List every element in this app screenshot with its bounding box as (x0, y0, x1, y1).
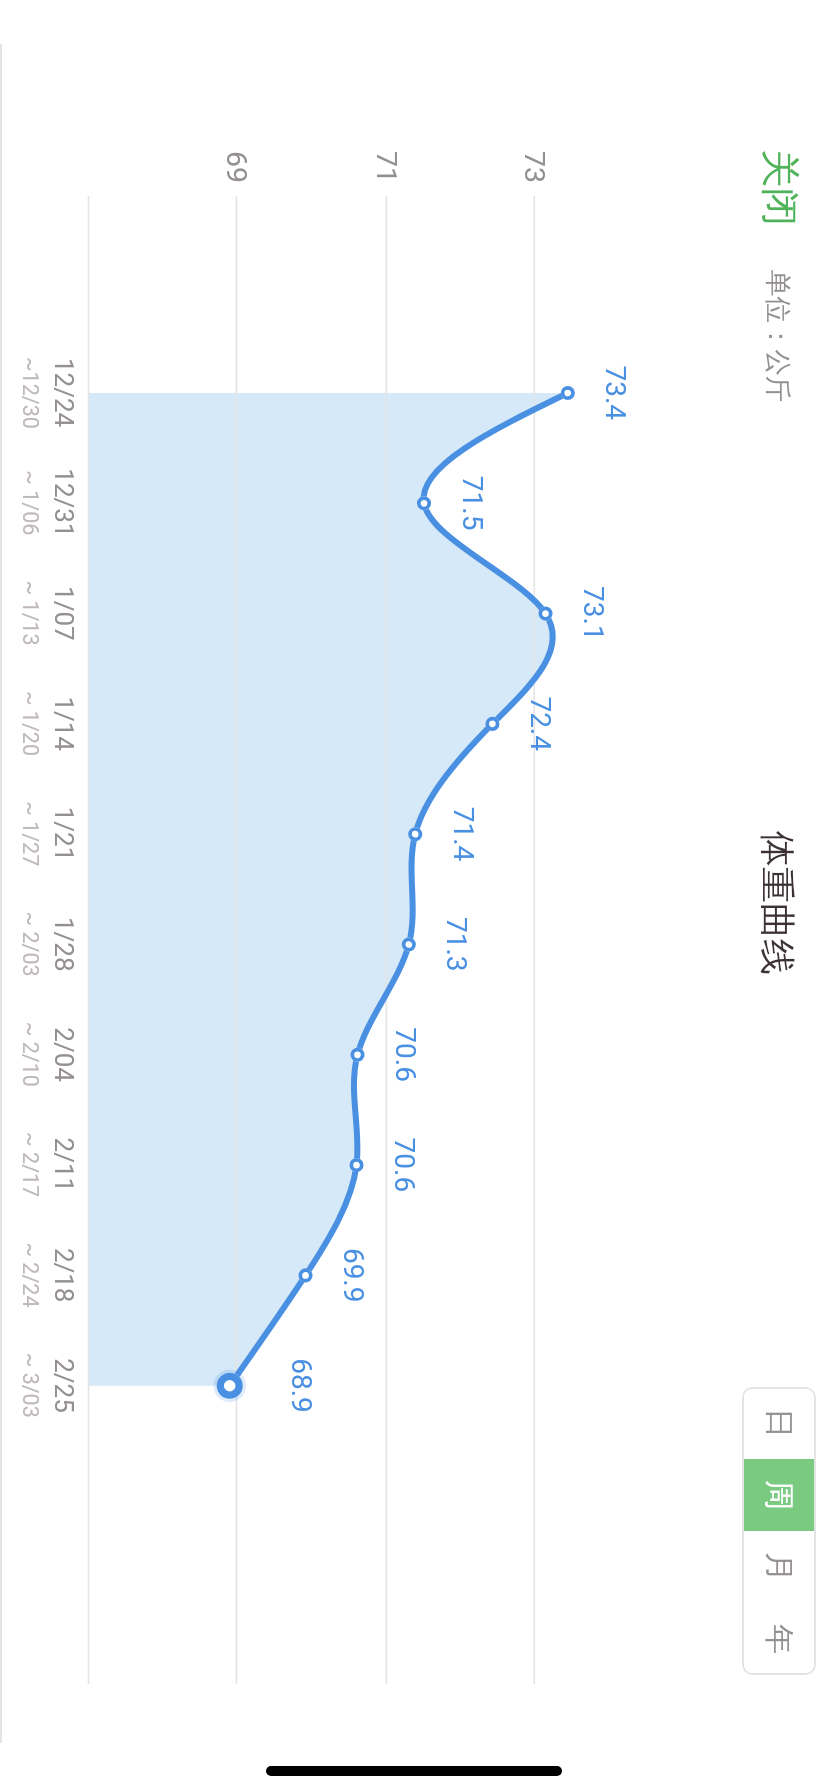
staticText: 单位：公斤 (762, 270, 795, 403)
button[interactable]: 日 (742, 1387, 816, 1459)
staticText: 周 (760, 1480, 798, 1510)
staticText: 月 (760, 1552, 798, 1582)
button[interactable]: 月 (742, 1531, 816, 1603)
staticText: 年 (760, 1624, 798, 1654)
staticText: 体重曲线 (755, 831, 800, 975)
staticText: 日 (760, 1408, 798, 1438)
button[interactable]: 周 (742, 1459, 816, 1531)
button[interactable]: 关闭 (730, 132, 828, 242)
staticText: 关闭 (755, 149, 804, 226)
button[interactable]: 年 (742, 1603, 816, 1675)
